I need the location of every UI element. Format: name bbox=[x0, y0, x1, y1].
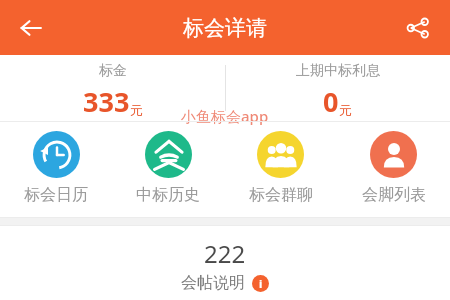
staticText: 上期中标利息 bbox=[296, 62, 380, 80]
button[interactable]: Share bbox=[396, 6, 440, 50]
staticText: 小鱼标会app bbox=[181, 106, 269, 126]
button[interactable]: 标会日历 bbox=[0, 122, 112, 217]
staticText: 0 bbox=[323, 83, 339, 120]
staticText: 标会详请 bbox=[183, 15, 267, 41]
staticText: 中标历史 bbox=[136, 185, 200, 205]
staticText: 333 bbox=[83, 83, 130, 120]
button[interactable]: Back bbox=[8, 5, 54, 51]
staticText: 标会群聊 bbox=[249, 185, 313, 205]
button[interactable]: 会帖说明 bbox=[181, 273, 269, 293]
staticText: 标会日历 bbox=[24, 185, 88, 205]
button[interactable]: 标会群聊 bbox=[224, 122, 337, 217]
staticText: 会帖说明 bbox=[181, 273, 245, 293]
staticText: 元 bbox=[339, 102, 352, 118]
button[interactable]: 中标历史 bbox=[112, 122, 224, 217]
staticText: i bbox=[259, 276, 263, 291]
staticText: 222 bbox=[204, 237, 246, 270]
staticText: 会脚列表 bbox=[362, 185, 426, 205]
staticText: 标金 bbox=[99, 62, 127, 80]
staticText: 元 bbox=[130, 102, 143, 118]
button[interactable]: 会脚列表 bbox=[337, 122, 450, 217]
